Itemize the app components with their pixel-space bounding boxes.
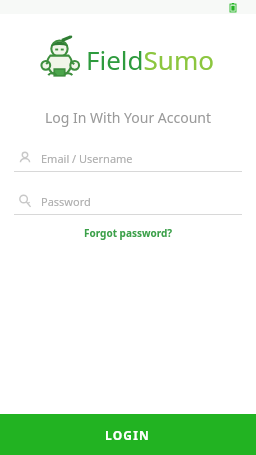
button[interactable]: Password	[14, 188, 242, 215]
button[interactable]: LOGIN	[0, 414, 256, 455]
other: Email or username	[18, 151, 32, 165]
button[interactable]: Email or username	[14, 145, 242, 172]
staticText: Forgot password?	[84, 226, 173, 240]
staticText: Log In With Your Account	[0, 108, 256, 127]
staticText: Email / Username	[41, 151, 133, 166]
staticText: Password	[41, 194, 91, 209]
button[interactable]: Forgot password?	[74, 223, 183, 243]
staticText: LOGIN	[105, 427, 151, 443]
other: Password	[18, 194, 32, 208]
staticText: FieldSumo	[86, 42, 214, 77]
